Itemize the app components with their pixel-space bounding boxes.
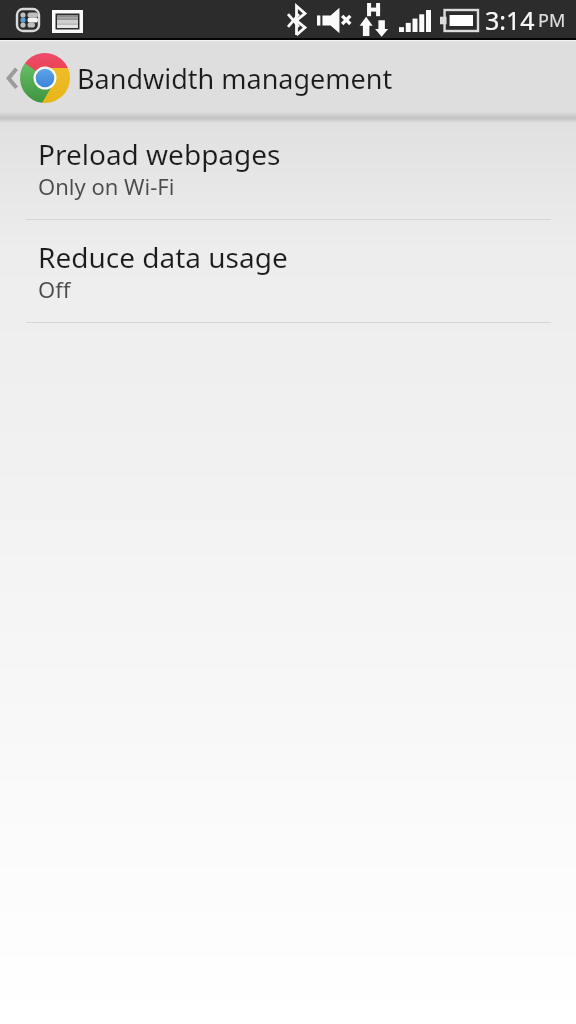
button[interactable]: Preload webpages xyxy=(0,117,576,220)
staticText: Preload webpages xyxy=(38,135,281,173)
staticText: Bandwidth management xyxy=(77,60,393,97)
button[interactable]: Navigate up xyxy=(0,40,72,115)
button[interactable]: Reduce data usage xyxy=(0,220,576,323)
staticText: Off xyxy=(38,274,71,304)
staticText: Only on Wi-Fi xyxy=(38,171,175,201)
staticText: 3:14 xyxy=(485,3,535,37)
staticText: Reduce data usage xyxy=(38,238,288,276)
staticText: PM xyxy=(538,8,566,33)
